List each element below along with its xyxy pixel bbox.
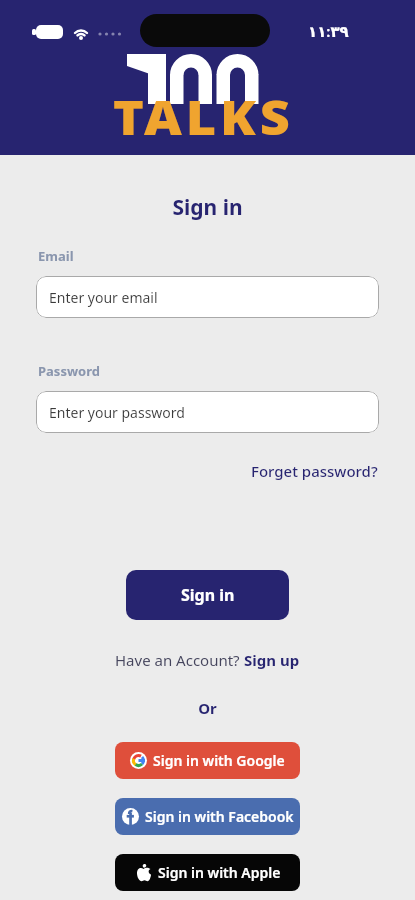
staticText: Have an Account? — [115, 650, 244, 670]
button[interactable]: Sign up — [244, 650, 300, 670]
staticText: Sign in with Google — [153, 751, 285, 770]
button[interactable]: Sign in — [126, 570, 289, 620]
button[interactable]: Sign in with Apple — [115, 854, 300, 891]
staticText: Sign in — [0, 193, 415, 222]
button[interactable]: Enter your email — [36, 276, 379, 318]
staticText: Enter your password — [49, 403, 185, 422]
staticText: TALKS — [113, 85, 294, 149]
staticText: Forget password? — [251, 461, 378, 481]
button[interactable]: Forget password? — [251, 461, 378, 481]
staticText: Enter your email — [49, 288, 158, 307]
staticText: Password — [38, 362, 100, 380]
button[interactable]: Enter your password — [36, 391, 379, 433]
staticText: ١١:٣٩ — [308, 21, 349, 41]
staticText: Sign up — [244, 650, 300, 670]
staticText: Email — [38, 247, 74, 265]
button[interactable]: Sign in with Facebook — [115, 798, 300, 835]
staticText: Or — [0, 698, 415, 718]
staticText: Sign in with Apple — [158, 863, 281, 882]
staticText: Sign in with Facebook — [145, 807, 294, 826]
button[interactable]: Sign in with Google — [115, 742, 300, 779]
staticText: Sign in — [181, 584, 235, 606]
